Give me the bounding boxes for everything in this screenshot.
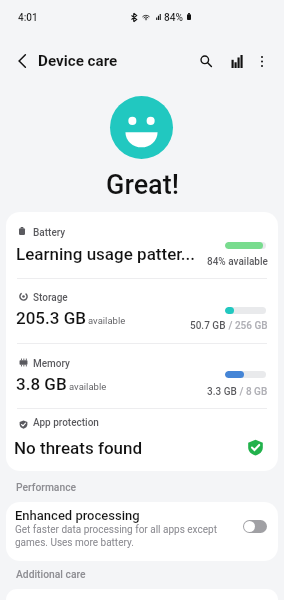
staticText: 3.8 GB bbox=[16, 374, 67, 394]
staticText: / 256 GB bbox=[226, 320, 268, 332]
staticText: 84% available bbox=[207, 256, 268, 268]
staticText: App protection bbox=[33, 417, 99, 429]
staticText: 205.3 GB bbox=[16, 308, 86, 328]
staticText: / 8 GB bbox=[237, 386, 268, 398]
staticText: 4:01 bbox=[18, 12, 38, 24]
staticText: Great! bbox=[106, 169, 179, 201]
button[interactable]: Enhanced processing bbox=[243, 520, 267, 533]
staticText: games. Uses more battery. bbox=[15, 537, 245, 549]
staticText: Storage bbox=[33, 292, 68, 304]
staticText: Learning usage patter... bbox=[16, 244, 196, 264]
staticText: No threats found bbox=[14, 438, 143, 458]
staticText: 84% bbox=[164, 12, 184, 24]
button[interactable]: Usage statistics bbox=[223, 48, 249, 74]
staticText: Device care bbox=[38, 52, 118, 70]
staticText: available bbox=[69, 381, 107, 392]
button[interactable]: Search bbox=[193, 48, 219, 74]
button[interactable]: Storage bbox=[6, 279, 278, 343]
staticText: Memory bbox=[33, 358, 70, 370]
staticText: Battery bbox=[33, 227, 66, 239]
staticText: Performance bbox=[16, 481, 77, 493]
staticText: 3.3 GB bbox=[207, 386, 237, 398]
button[interactable]: Memory bbox=[6, 344, 278, 408]
staticText: 50.7 GB bbox=[190, 320, 226, 332]
button[interactable]: Battery bbox=[6, 212, 278, 278]
button[interactable]: App protection bbox=[6, 409, 278, 471]
button[interactable]: More options bbox=[249, 48, 275, 74]
staticText: Additional care bbox=[16, 568, 86, 580]
staticText: Enhanced processing bbox=[15, 508, 140, 523]
staticText: Get faster data processing for all apps … bbox=[15, 524, 245, 536]
button[interactable]: Enhanced processing bbox=[6, 502, 278, 561]
button[interactable]: Navigate up bbox=[9, 48, 35, 74]
staticText: available bbox=[88, 315, 126, 326]
